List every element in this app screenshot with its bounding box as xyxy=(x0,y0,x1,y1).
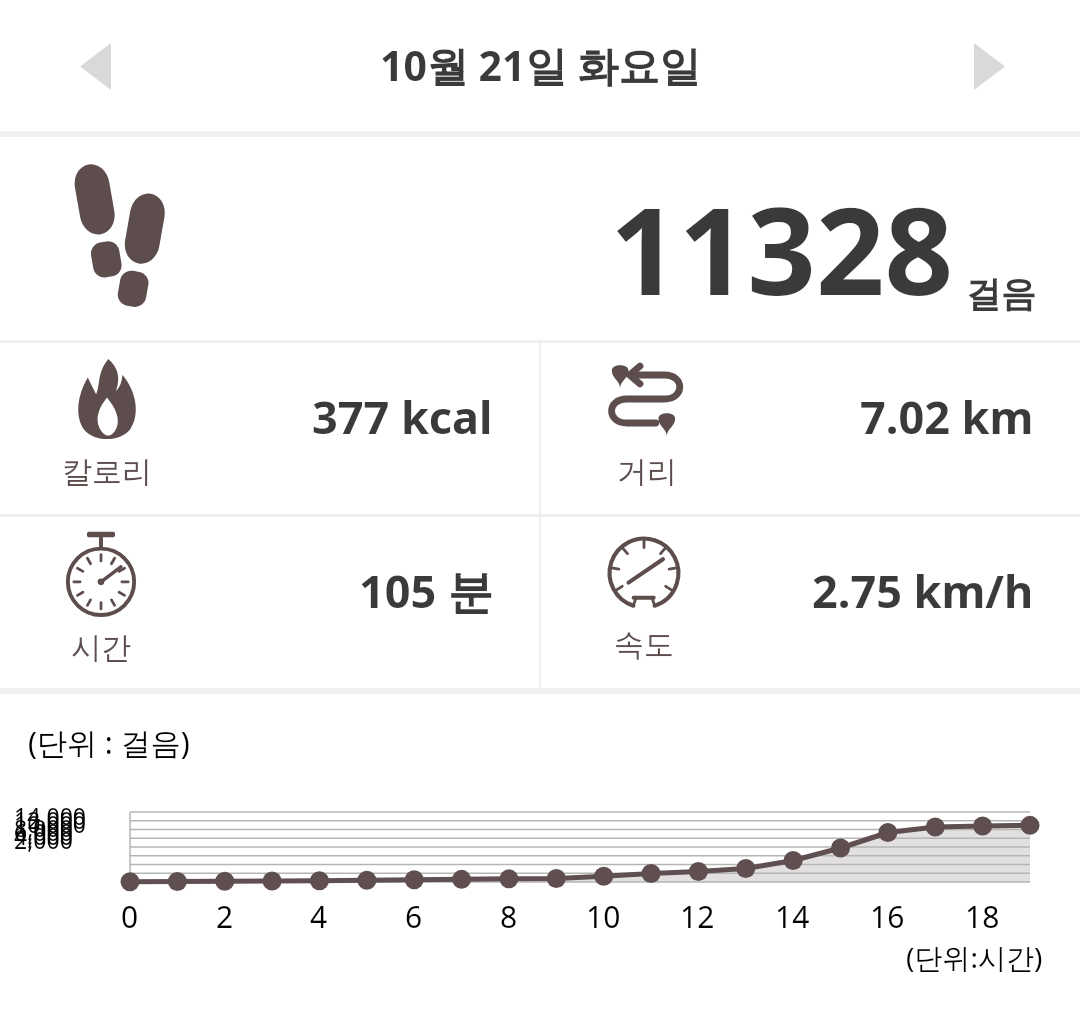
staticText: (단위:시간) xyxy=(906,938,1043,976)
staticText: 10,000 xyxy=(14,808,86,839)
staticText: 6,000 xyxy=(14,816,73,847)
staticText: 18 xyxy=(965,896,1000,937)
staticText: (단위 : 걸음) xyxy=(28,722,190,763)
staticText: 377 kcal xyxy=(312,386,493,447)
button[interactable]: 칼로리 xyxy=(0,343,539,514)
staticText: 4 xyxy=(310,896,328,937)
staticText: 속도 xyxy=(614,626,674,664)
button[interactable]: 시간 xyxy=(0,517,539,688)
staticText: 16 xyxy=(870,896,905,937)
staticText: 105 분 xyxy=(359,560,493,621)
staticText: 10 xyxy=(586,896,621,937)
staticText: 8,000 xyxy=(14,812,73,843)
staticText: 12 xyxy=(680,896,715,937)
staticText: 7.02 km xyxy=(860,386,1034,447)
button[interactable]: 11328 xyxy=(0,137,1080,340)
button[interactable]: 속도 xyxy=(541,517,1080,688)
staticText: 4,000 xyxy=(14,820,73,851)
button[interactable]: Previous day xyxy=(58,29,132,103)
staticText: 칼로리 xyxy=(62,453,152,491)
staticText: 시간 xyxy=(71,629,131,667)
staticText: 12,000 xyxy=(14,804,86,835)
staticText: 2 xyxy=(216,896,234,937)
staticText: 2.75 km/h xyxy=(812,560,1034,621)
staticText: 0 xyxy=(121,896,139,937)
staticText: 10월 21일 화요일 xyxy=(380,37,701,93)
staticText: 걸음 xyxy=(966,272,1036,316)
staticText: 14 xyxy=(775,896,810,937)
staticText: 거리 xyxy=(617,453,677,491)
staticText: 14,000 xyxy=(14,800,86,831)
button[interactable]: Next day xyxy=(952,29,1026,103)
staticText: 6 xyxy=(405,896,423,937)
staticText: 2,000 xyxy=(14,824,73,855)
staticText: 8 xyxy=(500,896,518,937)
button[interactable]: 거리 xyxy=(541,343,1080,514)
staticText: 11328 xyxy=(610,167,954,330)
